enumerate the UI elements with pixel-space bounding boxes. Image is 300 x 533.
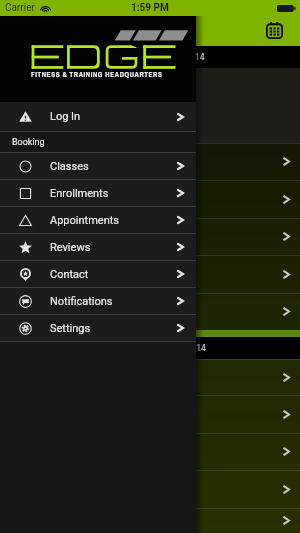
staticText: 1:59 PM [131,2,169,14]
button[interactable] [0,180,300,218]
button[interactable] [0,395,300,433]
button[interactable]: Appointments [0,207,196,233]
button[interactable]: Notifications [0,288,196,314]
button[interactable]: Reviews [0,234,196,260]
staticText: Appointments [50,214,119,227]
button[interactable] [0,255,300,293]
button[interactable]: Enrollments [0,180,196,206]
staticText: Log In [50,110,81,123]
button[interactable] [0,359,300,395]
staticText: Reviews [50,241,91,254]
button[interactable]: Log In [0,102,196,131]
button[interactable] [0,218,300,255]
button[interactable]: Calendar [261,18,287,44]
staticText: Tuesday, September 15, 2014 [95,343,206,353]
staticText: Monday, September 14, 2014 [95,52,205,62]
staticText: Classes [50,160,89,173]
button[interactable] [0,508,300,533]
staticText: Carrier [5,2,35,14]
staticText: Settings [50,322,91,335]
button[interactable]: Settings [0,315,196,341]
button[interactable] [0,143,300,180]
staticText: Booking [12,137,45,148]
button[interactable] [0,433,300,470]
button[interactable] [0,470,300,508]
staticText: Contact [50,268,89,281]
staticText: FITNESS & TRAINING HEADQUARTERS [31,70,163,80]
button[interactable]: Contact [0,261,196,287]
button[interactable] [0,293,300,330]
staticText: Notifications [50,295,113,308]
staticText: Enrollments [50,187,109,200]
button[interactable]: Classes [0,153,196,179]
